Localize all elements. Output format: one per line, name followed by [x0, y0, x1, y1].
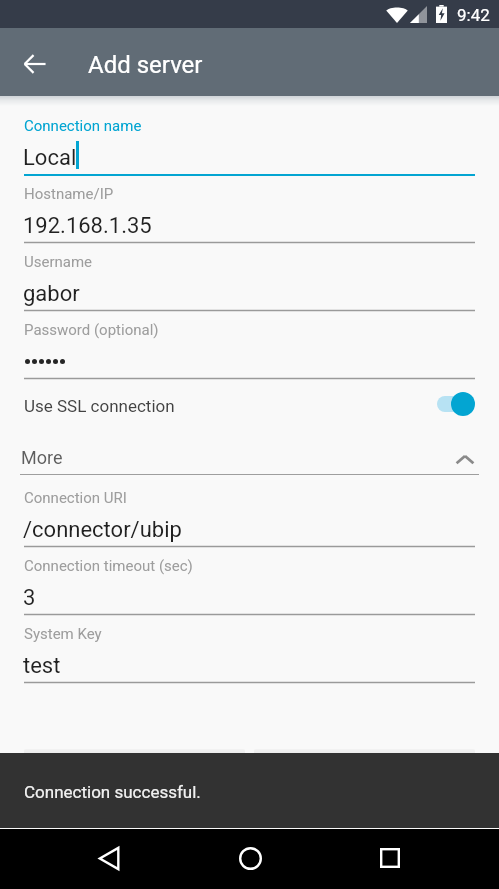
button[interactable]: Back — [11, 40, 59, 88]
button[interactable] — [24, 749, 245, 793]
button[interactable] — [0, 111, 499, 177]
staticText: Connection timeout (sec) — [24, 557, 193, 575]
button[interactable]: Back — [85, 834, 133, 882]
staticText: Add server — [88, 51, 203, 79]
button[interactable] — [0, 315, 499, 381]
button[interactable]: Use SSL connection — [0, 383, 499, 425]
button[interactable] — [0, 551, 499, 617]
staticText: Connection name — [24, 117, 142, 135]
button[interactable]: Home — [226, 834, 274, 882]
staticText: 9:42 — [457, 5, 490, 25]
button[interactable] — [0, 483, 499, 549]
staticText: Use SSL connection — [24, 396, 175, 416]
staticText: gabor — [23, 281, 80, 307]
staticText: Username — [24, 253, 93, 271]
staticText: Local — [23, 145, 77, 171]
button[interactable]: Recents — [366, 834, 414, 882]
staticText: test — [23, 653, 61, 679]
button[interactable] — [0, 247, 499, 313]
button[interactable] — [0, 179, 499, 245]
staticText: Connection successful. — [24, 782, 201, 802]
button[interactable] — [254, 749, 475, 793]
button[interactable]: Collapse More — [448, 443, 482, 477]
staticText: /connector/ubip — [23, 517, 182, 543]
staticText: More — [21, 447, 63, 468]
staticText: Connection URI — [24, 489, 127, 507]
staticText: 192.168.1.35 — [23, 213, 152, 239]
button[interactable] — [0, 619, 499, 685]
button[interactable]: Connection successful. — [0, 753, 499, 828]
staticText: Password (optional) — [24, 321, 159, 339]
staticText: 3 — [23, 585, 36, 611]
staticText: System Key — [24, 625, 102, 643]
staticText: Hostname/IP — [24, 185, 114, 203]
